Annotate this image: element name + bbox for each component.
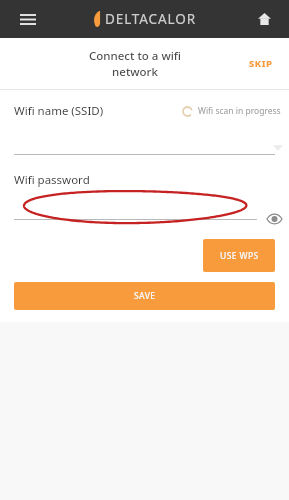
button[interactable]: Show password bbox=[263, 209, 285, 229]
staticText: DELTACALOR bbox=[105, 10, 196, 28]
button[interactable]: USE WPS bbox=[203, 239, 275, 272]
staticText: Wifi password bbox=[14, 172, 90, 188]
staticText: SKIP bbox=[249, 57, 273, 70]
staticText: USE WPS bbox=[220, 250, 259, 262]
button[interactable]: SAVE bbox=[14, 282, 275, 310]
staticText: Connect to a wifi network bbox=[89, 48, 181, 79]
button[interactable]: Menu bbox=[14, 5, 42, 33]
staticText: SAVE bbox=[134, 290, 156, 302]
staticText: Wifi name (SSID) bbox=[14, 103, 104, 119]
button[interactable]: Home bbox=[252, 7, 276, 31]
button[interactable]: SKIP bbox=[239, 49, 283, 78]
staticText: Wifi scan in progress bbox=[198, 105, 281, 117]
